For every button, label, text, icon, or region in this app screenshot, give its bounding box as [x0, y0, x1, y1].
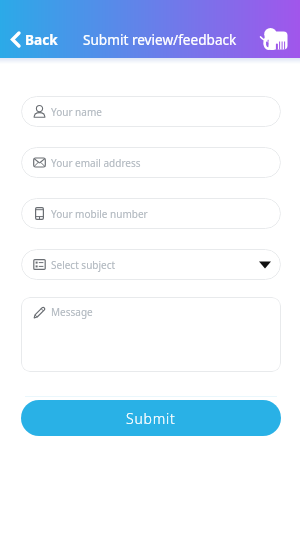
staticText: Message: [51, 305, 93, 319]
button[interactable]: Your name: [21, 96, 281, 127]
button[interactable]: Your mobile number: [21, 198, 281, 229]
staticText: Your email address: [51, 156, 141, 170]
staticText: Submit: [126, 409, 176, 428]
staticText: Your name: [51, 105, 102, 119]
button[interactable]: Submit: [21, 400, 281, 436]
staticText: Submit review/feedback: [83, 30, 237, 49]
button[interactable]: [261, 27, 289, 52]
button[interactable]: Back: [0, 30, 58, 49]
staticText: Back: [25, 30, 58, 49]
button[interactable]: Your email address: [21, 147, 281, 178]
button[interactable]: Select subject: [21, 249, 281, 280]
staticText: Select subject: [51, 258, 116, 272]
button[interactable]: Message: [21, 297, 281, 372]
staticText: Your mobile number: [51, 207, 148, 221]
